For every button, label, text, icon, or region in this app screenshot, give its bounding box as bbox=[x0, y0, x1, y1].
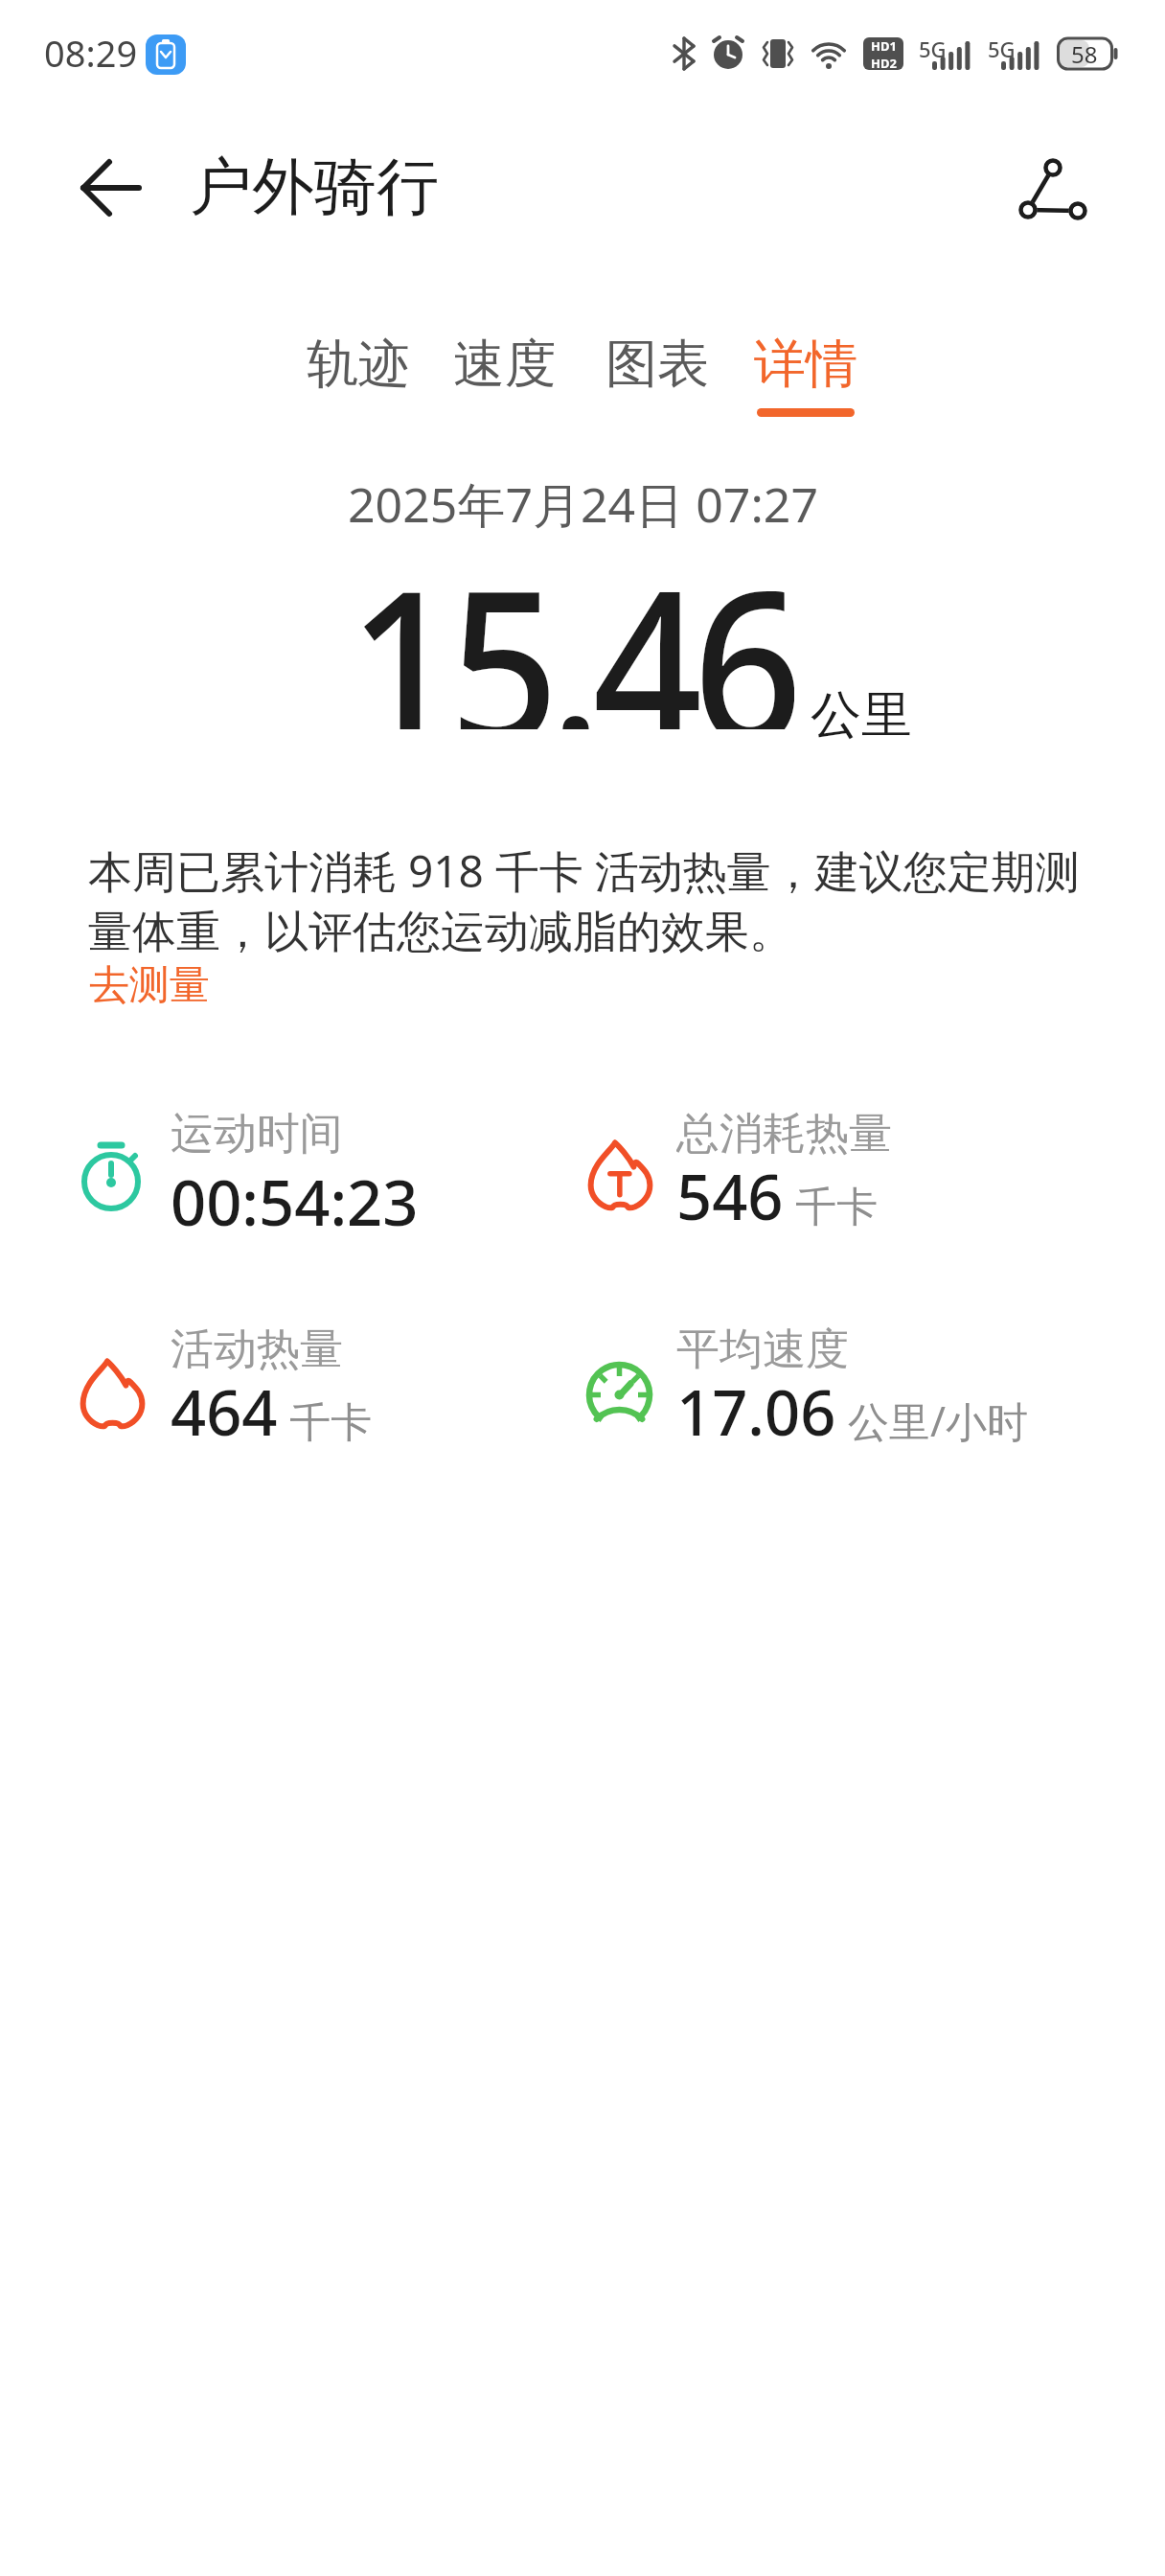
staticText: 详情 bbox=[754, 332, 857, 397]
staticText: 户外骑行 bbox=[190, 148, 439, 220]
staticText: 17.06 bbox=[676, 1369, 836, 1437]
staticText: 去测量 bbox=[89, 960, 210, 1011]
staticText: 5G bbox=[988, 34, 1016, 63]
staticText: 08:29 bbox=[44, 28, 138, 70]
staticText: 2025年7月24日 07:27 bbox=[348, 471, 818, 529]
staticText: 546 bbox=[676, 1154, 784, 1221]
staticText: 公里 bbox=[811, 683, 912, 747]
button[interactable]: 去测量 bbox=[89, 958, 281, 1012]
staticText: 运动时间 bbox=[171, 1107, 343, 1159]
staticText: 千卡 bbox=[289, 1397, 372, 1449]
button[interactable]: 详情 bbox=[739, 326, 873, 402]
staticText: 速度 bbox=[453, 332, 557, 397]
button[interactable]: 速度 bbox=[438, 326, 572, 402]
staticText: 公里/小时 bbox=[848, 1392, 1028, 1449]
staticText: 活动热量 bbox=[171, 1322, 343, 1374]
staticText: 轨迹 bbox=[307, 332, 410, 397]
staticText: 464 bbox=[171, 1369, 278, 1437]
staticText: HD2 bbox=[871, 55, 897, 70]
staticText: 本周已累计消耗 918 千卡 活动热量，建议您定期测 量体重，以评估您运动减脂的… bbox=[88, 840, 1080, 959]
staticText: 图表 bbox=[605, 332, 709, 397]
staticText: 总消耗热量 bbox=[676, 1107, 892, 1159]
staticText: 千卡 bbox=[795, 1182, 878, 1233]
staticText: 15.46 bbox=[349, 518, 794, 729]
button[interactable] bbox=[71, 151, 151, 224]
staticText: 00:54:23 bbox=[171, 1160, 419, 1227]
button[interactable] bbox=[1000, 146, 1106, 232]
staticText: 58 bbox=[1071, 38, 1098, 70]
staticText: 5G bbox=[919, 34, 947, 63]
staticText: HD1 bbox=[871, 37, 897, 55]
staticText: 平均速度 bbox=[676, 1322, 849, 1374]
button[interactable]: 图表 bbox=[590, 326, 724, 402]
button[interactable]: 轨迹 bbox=[291, 326, 425, 402]
